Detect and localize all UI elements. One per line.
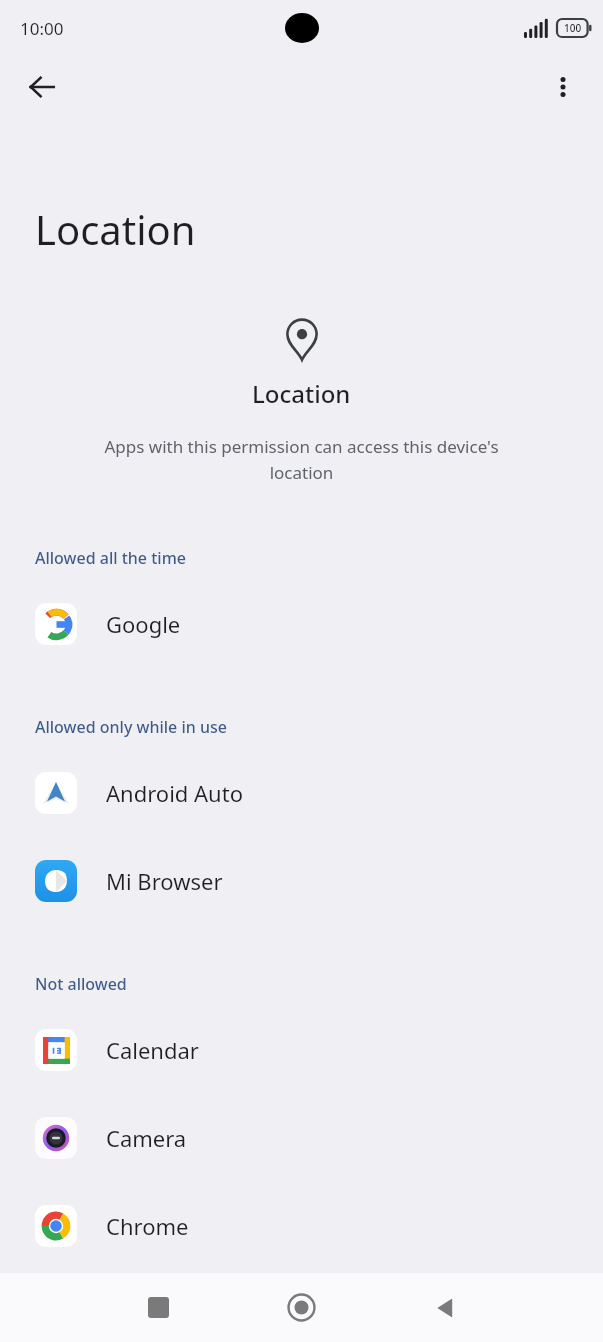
staticText: Location <box>252 377 351 410</box>
staticText: Allowed only while in use <box>35 716 227 738</box>
button[interactable]: Android Auto <box>0 749 603 837</box>
button[interactable]: Home <box>230 1273 373 1342</box>
staticText: Allowed all the time <box>35 547 186 569</box>
button[interactable]: Mi Browser <box>0 837 603 925</box>
staticText: Calendar <box>106 1035 199 1065</box>
staticText: Chrome <box>106 1211 189 1241</box>
button[interactable]: Calendar <box>0 1006 603 1094</box>
staticText: Camera <box>106 1123 187 1153</box>
button[interactable]: More options <box>535 59 591 115</box>
staticText: Not allowed <box>35 973 127 995</box>
staticText: Location <box>35 202 196 256</box>
staticText: 10:00 <box>20 17 64 40</box>
staticText: 100 <box>564 21 582 35</box>
button[interactable]: Back <box>12 57 72 117</box>
button[interactable]: Chrome <box>0 1182 603 1270</box>
staticText: Android Auto <box>106 778 243 808</box>
button[interactable]: Google <box>0 580 603 668</box>
staticText: Google <box>106 609 181 639</box>
button[interactable]: Back <box>373 1273 516 1342</box>
button[interactable]: Camera <box>0 1094 603 1182</box>
staticText: Apps with this permission can access thi… <box>100 435 503 484</box>
button[interactable]: Recent apps <box>87 1273 230 1342</box>
staticText: Mi Browser <box>106 866 223 896</box>
